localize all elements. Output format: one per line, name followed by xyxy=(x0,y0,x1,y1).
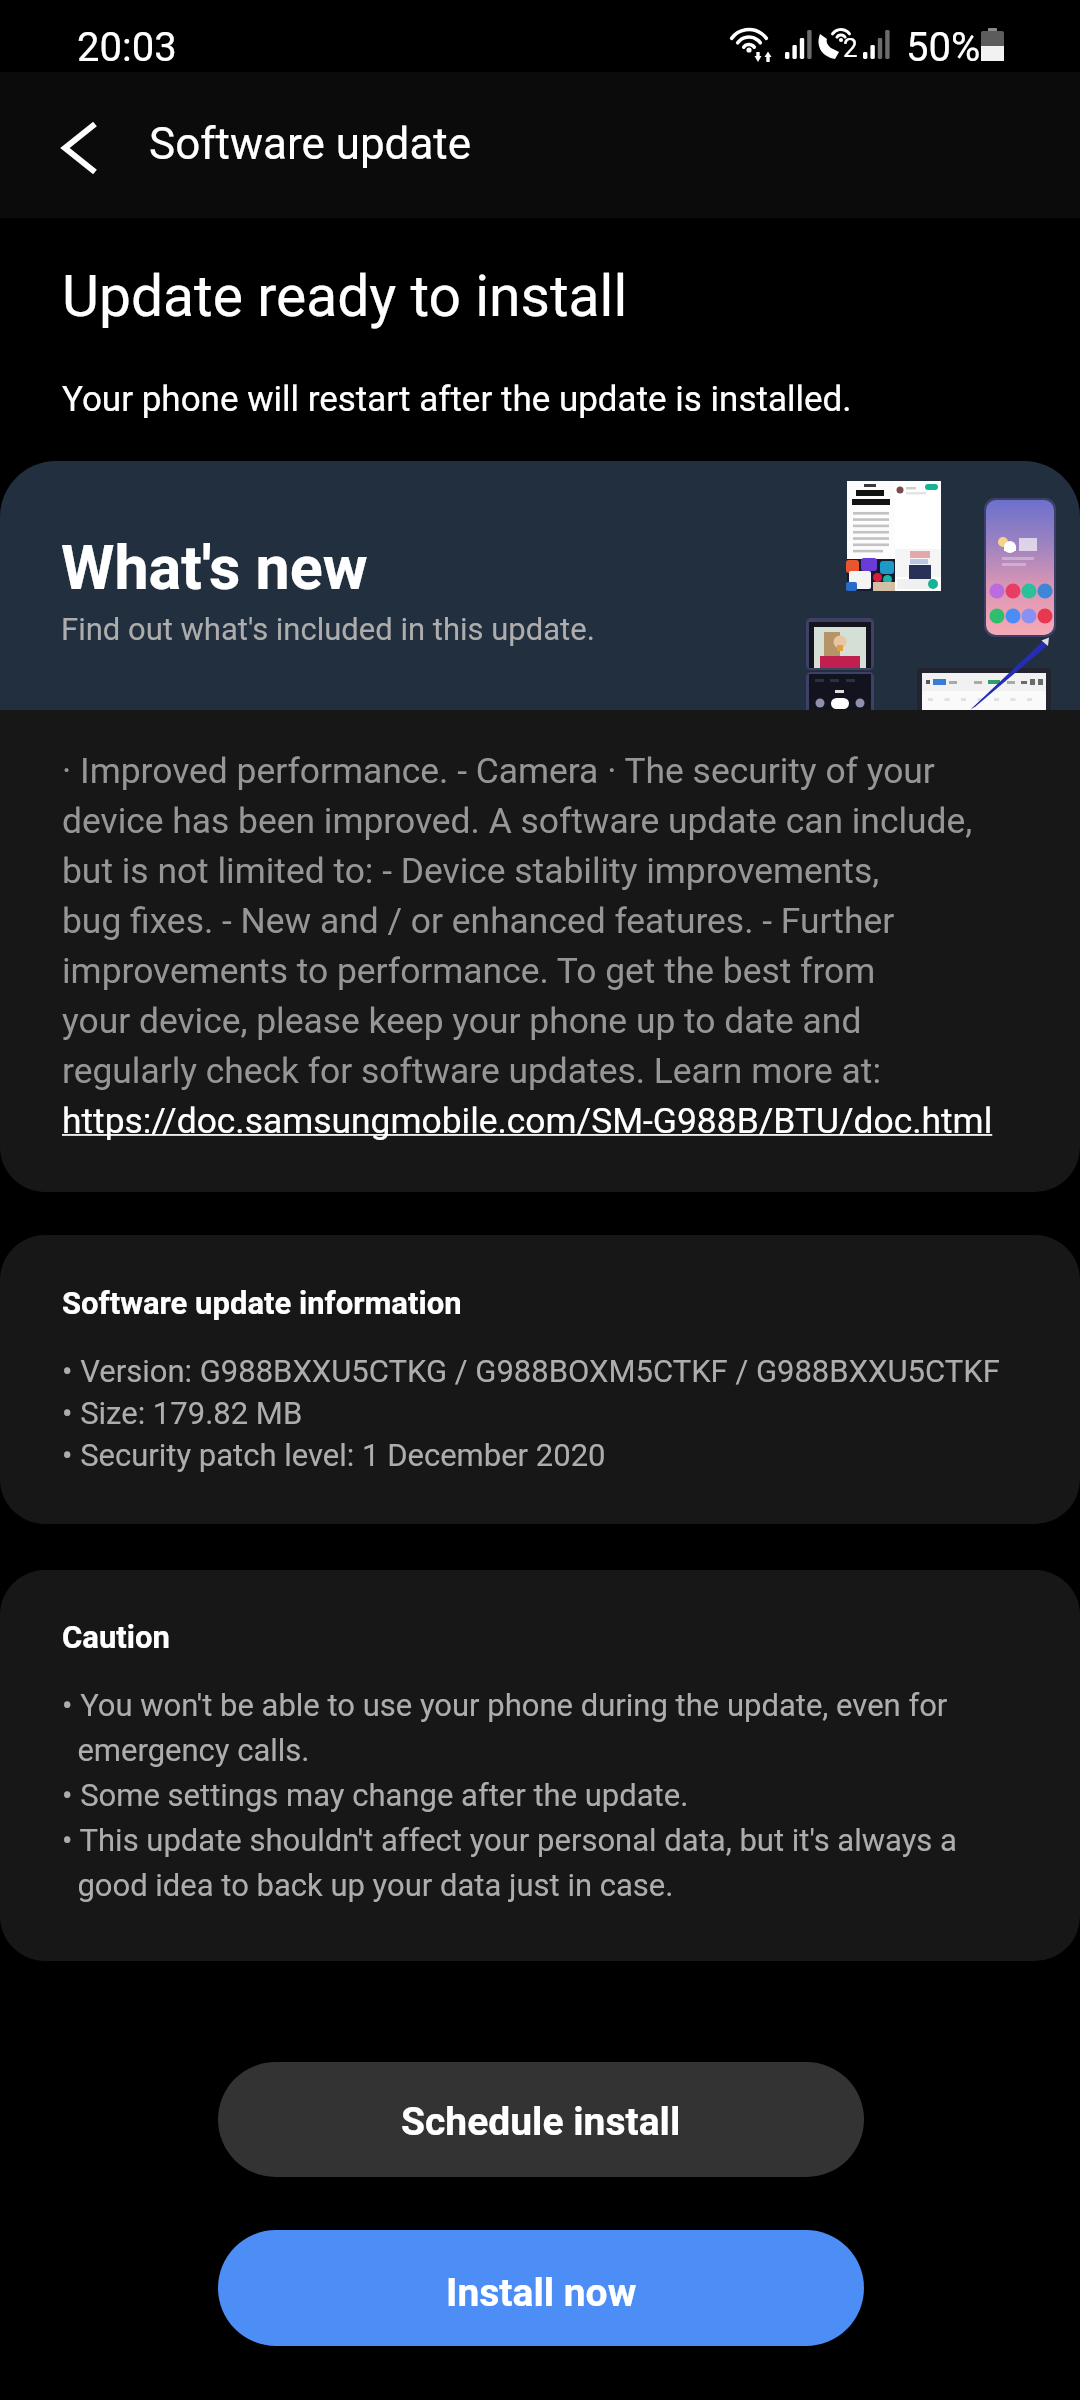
button[interactable]: Install now xyxy=(218,2230,864,2346)
staticText: Caution xyxy=(62,1619,170,1655)
staticText: 20:03 xyxy=(77,24,177,71)
staticText: https://doc.samsungmobile.com/SM-G988B/B… xyxy=(62,1100,993,1141)
staticText: • Version: G988BXXU5CTKG / G988BOXM5CTKF… xyxy=(62,1353,1000,1474)
button[interactable]: https://doc.samsungmobile.com/SM-G988B/B… xyxy=(62,1100,993,1141)
staticText: Software update information xyxy=(62,1285,462,1321)
button[interactable]: Back xyxy=(24,75,136,221)
staticText: Find out what's included in this update. xyxy=(61,611,595,647)
button[interactable]: What's new xyxy=(0,461,1080,710)
staticText: Schedule install xyxy=(401,2099,681,2145)
button[interactable]: Schedule install xyxy=(218,2062,864,2177)
staticText: · Improved performance. - Camera · The s… xyxy=(62,750,973,1091)
staticText: 50% xyxy=(906,24,981,71)
staticText: 2 xyxy=(843,33,858,63)
staticText: • You won't be able to use your phone du… xyxy=(62,1687,957,1903)
staticText: Install now xyxy=(446,2270,637,2316)
staticText: Update ready to install xyxy=(62,263,628,330)
staticText: Software update xyxy=(149,118,472,170)
staticText: Your phone will restart after the update… xyxy=(62,379,852,420)
staticText: What's new xyxy=(61,532,368,603)
